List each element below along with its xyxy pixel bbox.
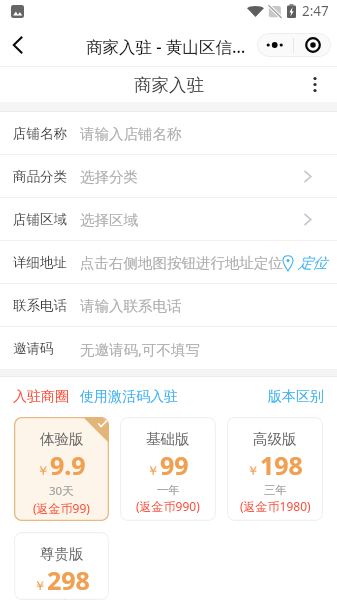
staticText: 三年	[264, 483, 287, 497]
staticText: 基础版	[146, 430, 190, 448]
staticText: ￥	[147, 463, 160, 479]
button[interactable]: Back	[0, 22, 34, 67]
button[interactable]: Menu	[293, 67, 337, 102]
button[interactable]: 商品分类	[0, 155, 337, 198]
button[interactable]: 入驻商圈	[13, 388, 69, 406]
staticText: 请输入店铺名称	[80, 125, 182, 143]
staticText: 点击右侧地图按钮进行地址定位	[80, 254, 283, 272]
staticText: 30天	[49, 483, 74, 499]
staticText: 99	[160, 448, 189, 482]
staticText: 9.9	[50, 448, 86, 482]
staticText: 五年	[50, 598, 73, 600]
staticText: (返金币990)	[136, 498, 200, 514]
staticText: 选择分类	[80, 168, 138, 186]
staticText: ￥	[34, 578, 47, 594]
button[interactable]: Close	[294, 33, 331, 57]
staticText: 版本区别	[268, 388, 324, 406]
button[interactable]: 邀请码	[0, 327, 337, 370]
staticText: 无邀请码,可不填写	[80, 339, 200, 359]
button[interactable]: 版本区别	[268, 388, 324, 406]
staticText: 请输入联系电话	[80, 297, 182, 315]
staticText: 店铺名称	[13, 125, 67, 142]
other: Screenshot	[11, 5, 24, 18]
staticText: (返金币1980)	[240, 498, 311, 514]
staticText: 商家入驻 - 黄山区信…	[86, 35, 246, 58]
button[interactable]: 店铺名称	[0, 112, 337, 155]
staticText: 一年	[157, 483, 180, 497]
staticText: 198	[260, 448, 303, 482]
staticText: 商家入驻	[134, 74, 204, 96]
staticText: 高级版	[253, 430, 297, 448]
staticText: 定位	[298, 254, 325, 272]
staticText: 邀请码	[13, 340, 54, 357]
button[interactable]: 基础版	[120, 417, 216, 521]
staticText: 使用激活码入驻	[80, 388, 178, 406]
staticText: 2:47	[302, 2, 329, 20]
staticText: ￥	[247, 463, 260, 479]
staticText: 选择区域	[80, 211, 138, 229]
staticText: 商品分类	[13, 168, 67, 185]
button[interactable]: 尊贵版	[14, 532, 109, 600]
staticText: 尊贵版	[40, 545, 84, 563]
button[interactable]: 使用激活码入驻	[80, 388, 178, 406]
staticText: 入驻商圈	[13, 388, 69, 406]
staticText: 详细地址	[13, 254, 67, 271]
staticText: (返金币99)	[33, 500, 90, 516]
button[interactable]: 体验版	[14, 417, 109, 521]
button[interactable]: 联系电话	[0, 284, 337, 327]
button[interactable]: 详细地址	[0, 241, 337, 284]
button[interactable]: 店铺区域	[0, 198, 337, 241]
staticText: 体验版	[40, 430, 84, 448]
staticText: 联系电话	[13, 297, 67, 314]
staticText: 店铺区域	[13, 211, 67, 228]
button[interactable]: More options	[257, 33, 293, 57]
staticText: ￥	[37, 463, 50, 479]
button[interactable]: 高级版	[227, 417, 323, 521]
staticText: 298	[47, 563, 90, 597]
